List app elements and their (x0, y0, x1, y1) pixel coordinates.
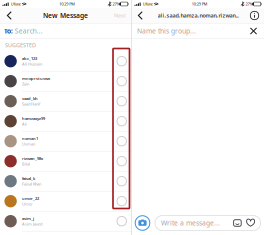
staticText: Name this group... (137, 27, 196, 35)
button[interactable]: noman1 (0, 131, 131, 151)
staticText: Ufone (11, 1, 21, 7)
staticText: hamzaxyz99 (22, 116, 45, 121)
staticText: Usman (22, 141, 35, 147)
button[interactable]: Back (3, 8, 16, 23)
staticText: Faisal Khan (22, 181, 41, 187)
staticText: 10:29 PM (192, 1, 208, 7)
staticText: SUGGESTED (5, 42, 36, 49)
staticText: Bilal (22, 161, 30, 167)
staticText: umer_22 (22, 196, 39, 201)
button[interactable]: rizwan_98x (0, 151, 131, 171)
button[interactable]: mnoprstuvwx (0, 71, 131, 91)
button[interactable]: abc_123 (0, 51, 131, 71)
staticText: faisal_k (22, 176, 35, 181)
staticText: To: (4, 27, 13, 35)
staticText: Ufone (143, 1, 153, 7)
staticText: Next (114, 12, 126, 19)
button[interactable]: hamzaxyz99 (0, 111, 131, 131)
button[interactable]: umer_22 (0, 191, 131, 211)
staticText: 27% (113, 1, 120, 7)
staticText: Umer (22, 201, 33, 207)
staticText: asim_j (22, 216, 34, 221)
staticText: Write a message... (161, 219, 220, 227)
button[interactable]: Open camera (135, 215, 150, 231)
button[interactable]: saad_kh (0, 91, 131, 111)
staticText: abc_123 (22, 56, 37, 61)
button[interactable]: faisal_k (0, 171, 131, 191)
staticText: mnoprstuvwx (22, 76, 50, 81)
button[interactable]: Next (112, 8, 128, 23)
staticText: New Message (43, 11, 88, 20)
staticText: 27% (246, 1, 253, 7)
staticText: saad_kh (22, 96, 38, 101)
button[interactable]: Write a message... (155, 215, 261, 230)
staticText: Ali Hussain (22, 61, 42, 67)
staticText: rizwan_98x (22, 156, 43, 161)
staticText: Saad Hanif (22, 101, 40, 107)
staticText: Search... (15, 27, 43, 35)
staticText: Asim Javed (22, 221, 42, 227)
button[interactable]: Dismiss (248, 24, 259, 38)
button[interactable]: Back (135, 8, 146, 23)
staticText: Ali (22, 121, 27, 127)
button[interactable]: Conversation details (248, 8, 261, 23)
staticText: ali, saad, hamza, noman, rizwan... (157, 12, 238, 19)
button[interactable]: asim_j (0, 211, 131, 231)
staticText: noman1 (22, 136, 38, 141)
staticText: 10:29 PM (59, 1, 75, 7)
staticText: Zain (22, 81, 29, 87)
